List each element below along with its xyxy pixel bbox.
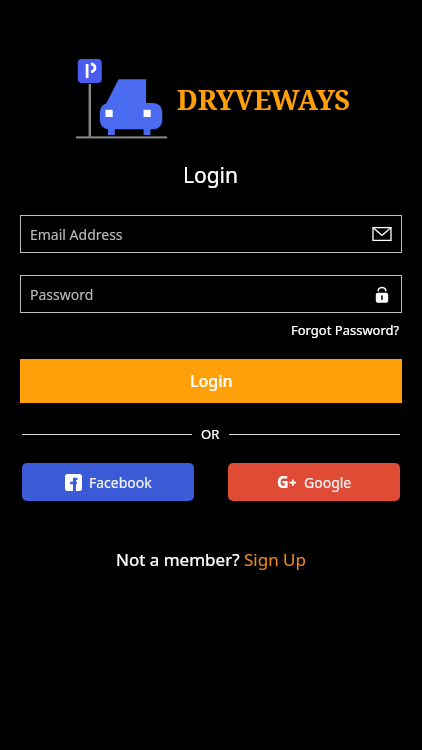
button[interactable]: Password bbox=[20, 275, 402, 313]
button[interactable]: Forgot Password? bbox=[289, 319, 402, 341]
staticText: Login bbox=[190, 370, 233, 392]
staticText: DRYVEWAYS bbox=[177, 81, 350, 118]
button[interactable]: G bbox=[228, 463, 400, 501]
staticText: Not a member? bbox=[116, 548, 244, 571]
button[interactable]: Email Address bbox=[20, 215, 402, 253]
button[interactable]: Facebook bbox=[22, 463, 194, 501]
staticText: Login bbox=[183, 161, 239, 190]
other: Password bbox=[372, 284, 392, 304]
other: Email bbox=[372, 224, 392, 244]
staticText: Email Address bbox=[30, 225, 372, 244]
button[interactable]: Login bbox=[20, 359, 402, 403]
staticText: Google bbox=[304, 473, 352, 492]
staticText: Facebook bbox=[89, 473, 152, 492]
staticText: G bbox=[277, 471, 289, 493]
button[interactable]: Sign Up bbox=[244, 548, 306, 571]
staticText: OR bbox=[201, 425, 220, 443]
staticText: Sign Up bbox=[244, 548, 306, 571]
staticText: + bbox=[289, 473, 297, 491]
staticText: Forgot Password? bbox=[291, 321, 400, 339]
staticText: Password bbox=[30, 285, 372, 304]
